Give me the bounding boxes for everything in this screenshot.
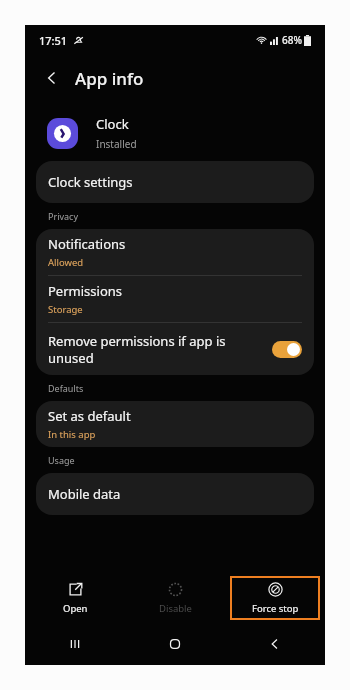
staticText: Set as default (48, 407, 131, 425)
button[interactable]: Notifications (36, 229, 314, 275)
staticText: Permissions (48, 282, 123, 300)
staticText: App info (75, 67, 144, 90)
staticText: Notifications (48, 235, 126, 253)
button[interactable]: Recent apps (25, 623, 125, 665)
staticText: Storage (48, 303, 83, 316)
button[interactable]: Mobile data (36, 473, 314, 515)
staticText: Clock settings (48, 173, 133, 191)
staticText: Force stop (252, 602, 299, 615)
button[interactable]: Remove permissions if app is unused (36, 323, 314, 375)
staticText: Usage (48, 454, 75, 466)
staticText: Allowed (48, 256, 84, 269)
button[interactable]: Remove permissions toggle (272, 341, 302, 358)
button[interactable]: Set as default (36, 401, 314, 447)
staticText: Defaults (48, 382, 84, 394)
staticText: 17:51 (39, 33, 68, 48)
button[interactable]: Back (225, 623, 325, 665)
staticText: Mobile data (48, 485, 121, 503)
button[interactable]: Permissions (36, 276, 314, 322)
staticText: Remove permissions if app is unused (48, 332, 226, 367)
staticText: Installed (96, 137, 137, 151)
staticText: In this app (48, 428, 96, 441)
button[interactable]: Disable (125, 576, 225, 620)
button[interactable]: Open (25, 576, 125, 620)
staticText: 68% (282, 33, 302, 47)
staticText: Privacy (48, 210, 79, 222)
button[interactable]: Force stop (230, 576, 320, 620)
button[interactable]: Clock settings (36, 161, 314, 203)
staticText: Disable (159, 602, 192, 615)
button[interactable]: Home (125, 623, 225, 665)
staticText: Clock (96, 115, 129, 133)
button[interactable]: Back (39, 65, 65, 91)
staticText: Open (63, 602, 88, 615)
